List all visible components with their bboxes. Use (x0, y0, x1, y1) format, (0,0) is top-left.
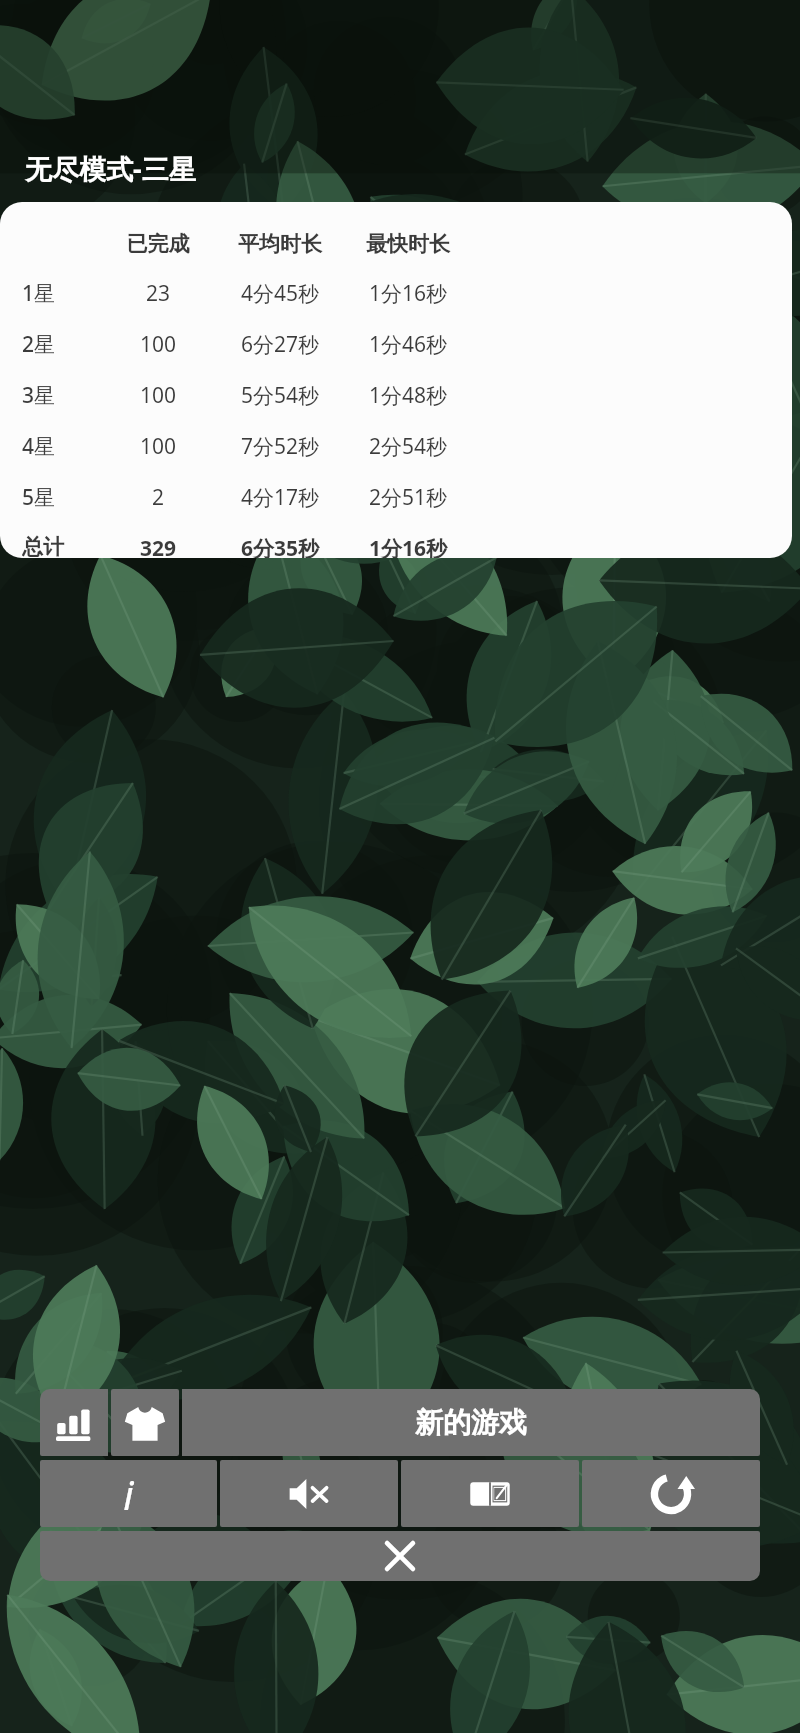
staticText: 无尽模式-三星 (25, 150, 196, 187)
button[interactable]: 新的游戏 (182, 1389, 760, 1456)
staticText: 100 (100, 432, 216, 460)
staticText: 2分54秒 (344, 432, 472, 460)
staticText: 最快时长 (344, 231, 472, 257)
staticText: 新的游戏 (415, 1405, 527, 1440)
staticText: 平均时长 (216, 231, 344, 257)
staticText: 7分52秒 (216, 432, 344, 460)
staticText: 1分46秒 (344, 330, 472, 358)
staticText: i (123, 1467, 134, 1521)
staticText: 总计 (22, 534, 100, 558)
button[interactable]: Restart (582, 1460, 760, 1527)
button[interactable]: Notes (401, 1460, 579, 1527)
staticText: 1分16秒 (344, 279, 472, 307)
staticText: 1分48秒 (344, 381, 472, 409)
staticText: 2星 (22, 330, 100, 358)
staticText: 23 (100, 279, 216, 307)
staticText: 100 (100, 330, 216, 358)
staticText: 329 (100, 534, 216, 558)
staticText: 100 (100, 381, 216, 409)
button[interactable]: Info (40, 1460, 217, 1527)
staticText: 4分45秒 (216, 279, 344, 307)
staticText: 6分27秒 (216, 330, 344, 358)
staticText: 2 (100, 483, 216, 511)
staticText: 6分35秒 (216, 534, 344, 558)
button[interactable]: Close (40, 1531, 760, 1581)
button[interactable]: Statistics (40, 1389, 108, 1456)
staticText: 2分51秒 (344, 483, 472, 511)
staticText: 3星 (22, 381, 100, 409)
button[interactable]: Mute (220, 1460, 398, 1527)
staticText: 已完成 (100, 231, 216, 257)
staticText: 5分54秒 (216, 381, 344, 409)
staticText: 5星 (22, 483, 100, 511)
staticText: 4星 (22, 432, 100, 460)
button[interactable]: Themes (111, 1389, 179, 1456)
staticText: 1星 (22, 279, 100, 307)
staticText: 4分17秒 (216, 483, 344, 511)
staticText: 1分16秒 (344, 534, 472, 558)
